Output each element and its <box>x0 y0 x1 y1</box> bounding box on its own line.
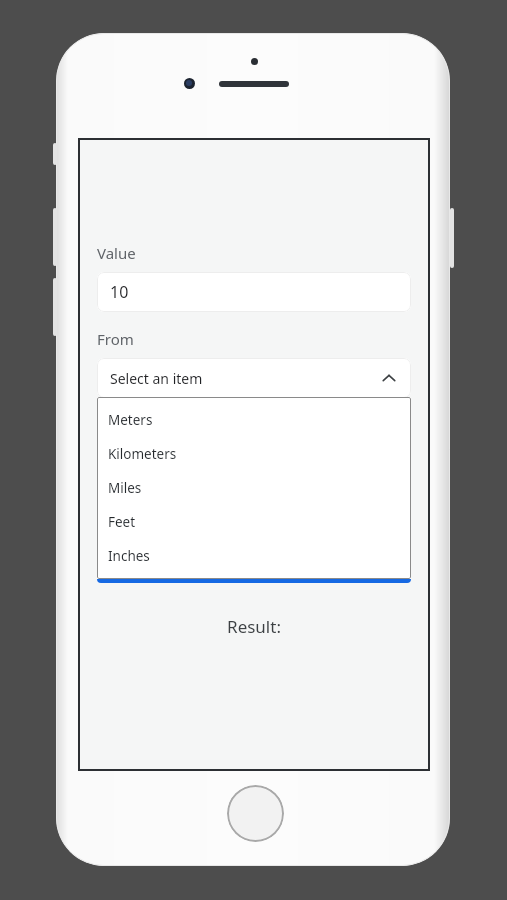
button[interactable]: Meters <box>97 403 411 437</box>
button[interactable]: Kilometers <box>97 437 411 471</box>
staticText: Value <box>97 243 136 263</box>
button[interactable]: Miles <box>97 471 411 505</box>
staticText: 10 <box>110 281 129 303</box>
staticText: Miles <box>108 479 142 497</box>
button[interactable]: 10 <box>97 272 411 312</box>
button[interactable]: Home <box>227 785 284 842</box>
button[interactable]: Feet <box>97 505 411 539</box>
staticText: Select an item <box>110 369 203 388</box>
staticText: From <box>97 329 134 349</box>
staticText: Inches <box>108 547 150 565</box>
staticText: Result: <box>97 615 411 638</box>
button[interactable]: Select an item dropdown <box>97 358 411 398</box>
staticText: Kilometers <box>108 445 177 463</box>
staticText: Meters <box>108 411 153 429</box>
button[interactable]: Inches <box>97 539 411 573</box>
staticText: Feet <box>108 513 136 531</box>
